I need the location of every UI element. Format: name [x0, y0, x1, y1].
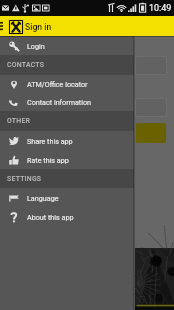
button[interactable]: Contact information — [0, 93, 134, 111]
button[interactable]: About this app — [0, 207, 134, 226]
staticText: About this app — [27, 213, 74, 221]
button[interactable]: Share this app — [0, 131, 134, 151]
staticText: Share this app — [27, 137, 73, 145]
staticText: Contact information — [27, 98, 92, 106]
button[interactable]: Language — [0, 188, 134, 207]
staticText: 10:49 — [149, 3, 172, 14]
button[interactable]: Open navigation drawer — [0, 16, 3, 36]
staticText: Login — [27, 42, 45, 50]
button[interactable]: ATM/Office locator — [0, 75, 134, 93]
staticText: Rate this app — [27, 156, 69, 164]
staticText: ATM/Office locator — [27, 80, 88, 88]
staticText: Sign in — [25, 22, 52, 32]
button[interactable]: Rate this app — [0, 151, 134, 169]
staticText: OTHER — [7, 117, 31, 125]
staticText: SETTINGS — [7, 175, 42, 183]
staticText: CONTACTS — [7, 61, 45, 69]
button[interactable]: Login — [0, 36, 134, 55]
staticText: Language — [27, 194, 59, 202]
